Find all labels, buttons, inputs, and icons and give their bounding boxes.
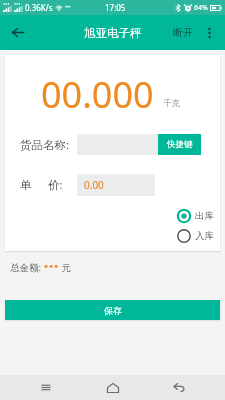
button[interactable]: 快捷键 [158,134,201,155]
button[interactable]: 入库 [177,229,214,243]
staticText: 00.000 [41,70,154,119]
staticText: 总金额: [10,261,44,274]
staticText: 0.36K/s [25,2,53,13]
button[interactable]: Home [93,375,133,400]
staticText: 入库 [195,230,214,242]
staticText: 快捷键 [167,139,193,150]
staticText: 货品名称: [20,137,70,153]
button[interactable]: More options [197,21,221,45]
staticText: 价: [48,177,63,193]
button[interactable]: Recents [26,375,66,400]
staticText: ••• [65,4,71,11]
staticText: 0.00 [84,178,104,192]
button[interactable]: 保存 [5,300,220,320]
staticText: 17:05 [105,2,126,13]
staticText: 单 [20,178,32,192]
staticText: 元 [59,261,71,274]
staticText: 旭亚电子秤 [84,26,142,40]
staticText: 64% [194,3,208,13]
staticText: 保存 [104,305,122,316]
button[interactable]: Back [159,375,199,400]
staticText: 千克 [163,98,180,109]
button[interactable]: 断开 [169,20,197,45]
button[interactable]: Back [0,15,35,50]
staticText: 断开 [173,26,193,39]
button[interactable]: 0.00 [77,174,155,196]
button[interactable]: 出库 [177,209,214,223]
staticText: 出库 [195,210,214,222]
